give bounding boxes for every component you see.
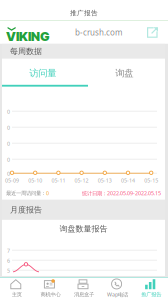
button[interactable]: Open in browser [147, 27, 168, 38]
staticText: 05-12 [75, 177, 89, 184]
staticText: 05-14 [121, 177, 135, 184]
staticText: 主页 [12, 291, 22, 298]
staticText: 0 [7, 170, 10, 177]
staticText: 0 [46, 190, 49, 197]
staticText: 统计日期：2022.05.09-2022.05.15 [82, 190, 161, 197]
button[interactable]: 主页 [0, 276, 34, 300]
staticText: 05-11 [51, 177, 65, 184]
staticText: VIKING [6, 28, 50, 44]
staticText: 05-15 [144, 177, 158, 184]
staticText: 5 [7, 267, 10, 274]
button[interactable]: 询盘 [83, 59, 165, 87]
staticText: 0 [7, 156, 10, 163]
staticText: 月度报告 [10, 205, 42, 215]
staticText: 6 [7, 257, 10, 264]
staticText: 0 [7, 108, 10, 115]
staticText: 05-10 [28, 177, 42, 184]
button[interactable]: 商机中心 [34, 276, 67, 300]
staticText: 推广报告 [70, 9, 98, 17]
staticText: 05-09 [5, 177, 19, 184]
button[interactable]: 访问量 [2, 59, 83, 87]
staticText: 商机中心 [40, 291, 60, 298]
staticText: 询盘 [115, 67, 133, 79]
staticText: b-crush.com [75, 27, 122, 38]
staticText: 访问量 [29, 67, 56, 79]
button[interactable]: 消息盒子 [67, 276, 101, 300]
staticText: 0 [7, 140, 10, 147]
staticText: Wap电话 [107, 291, 128, 298]
staticText: 每周数据 [10, 46, 42, 56]
staticText: 7 [7, 247, 10, 254]
staticText: 推广报告 [141, 291, 161, 298]
staticText: 消息盒子 [74, 291, 94, 298]
staticText: 最近一周访问量： [6, 190, 46, 197]
button[interactable]: Wap电话 [101, 276, 134, 300]
staticText: 0 [7, 124, 10, 131]
button[interactable]: 推广报告 [134, 276, 168, 300]
staticText: 05-13 [98, 177, 112, 184]
staticText: 询盘数量报告 [59, 224, 107, 234]
